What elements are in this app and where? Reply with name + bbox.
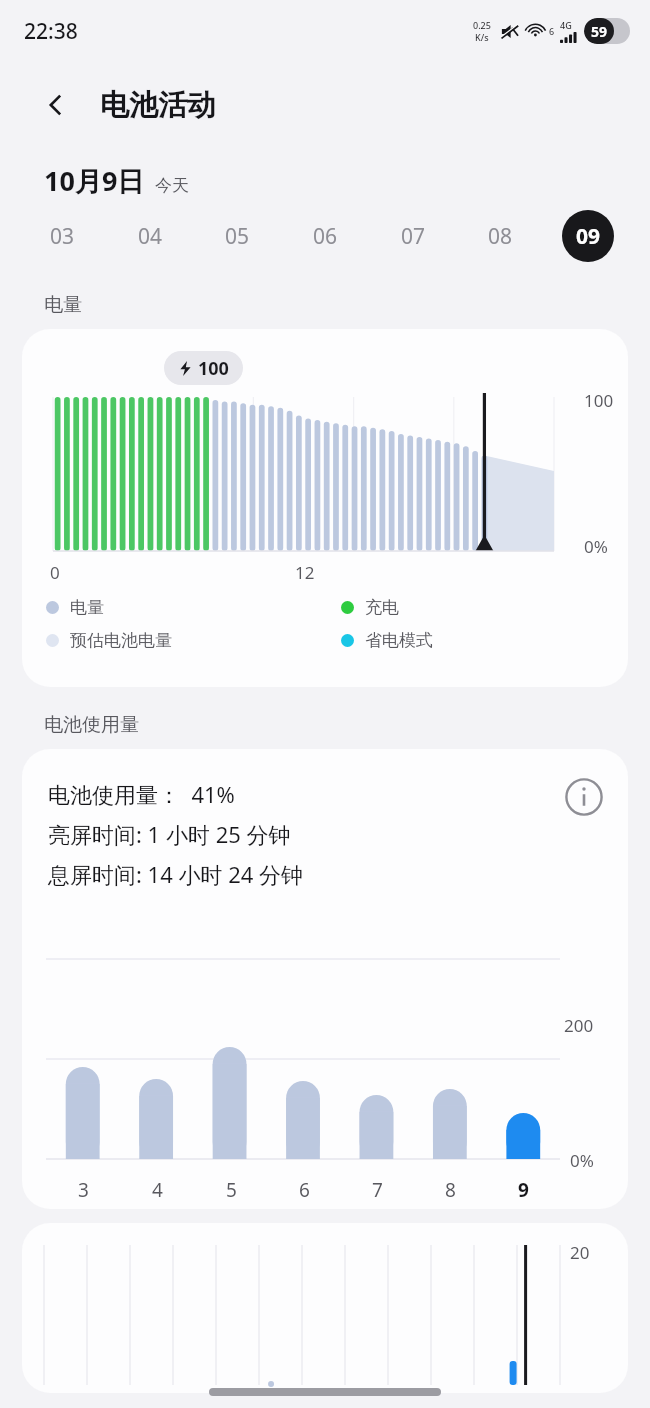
button[interactable]: 20	[22, 1223, 628, 1393]
staticText: 8	[445, 1177, 456, 1203]
staticText: 7	[372, 1177, 383, 1203]
staticText: 3	[78, 1177, 89, 1203]
staticText: 04	[138, 222, 163, 251]
staticText: 电量	[44, 293, 82, 317]
button[interactable]: 电池使用量： 41%	[22, 749, 628, 1209]
staticText: 05	[225, 222, 250, 251]
staticText: 充电	[365, 597, 399, 618]
staticText: 5	[226, 1177, 237, 1203]
staticText: 电池活动	[100, 87, 216, 124]
staticText: 06	[313, 222, 338, 251]
staticText: 电量	[70, 597, 104, 618]
staticText: 0%	[570, 1149, 594, 1172]
button[interactable]: 05	[211, 210, 263, 262]
staticText: 22:38	[24, 17, 78, 46]
staticText: 20	[570, 1241, 590, 1264]
staticText: 100	[584, 389, 614, 412]
staticText: 0.25	[473, 19, 491, 31]
staticText: 省电模式	[365, 630, 433, 651]
staticText: 6	[299, 1177, 310, 1203]
button[interactable]: 09	[562, 210, 614, 262]
staticText: 12	[295, 561, 315, 584]
staticText: 今天	[155, 175, 189, 196]
button[interactable]: 08	[474, 210, 526, 262]
staticText: 09	[576, 222, 601, 251]
staticText: 电池使用量	[44, 713, 139, 737]
staticText: 6	[549, 25, 555, 37]
button[interactable]: 03	[36, 210, 88, 262]
staticText: 亮屏时间: 1 小时 25 分钟	[48, 819, 291, 849]
button[interactable]: 07	[387, 210, 439, 262]
staticText: 0%	[584, 535, 608, 558]
staticText: 08	[488, 222, 513, 251]
staticText: 03	[50, 222, 75, 251]
button[interactable]: 100	[22, 329, 628, 687]
staticText: 预估电池电量	[70, 630, 172, 651]
staticText: 4G	[560, 19, 572, 31]
button[interactable]: 04	[124, 210, 176, 262]
button[interactable]: Info	[562, 775, 606, 819]
staticText: 9	[518, 1177, 529, 1203]
staticText: 59	[591, 22, 608, 41]
staticText: 0	[50, 561, 60, 584]
staticText: 4	[152, 1177, 163, 1203]
staticText: 200	[564, 1014, 594, 1037]
staticText: 息屏时间: 14 小时 24 分钟	[48, 859, 304, 889]
button[interactable]: Back	[34, 83, 78, 127]
staticText: 07	[401, 222, 426, 251]
staticText: K/s	[475, 31, 489, 43]
staticText: 10月9日	[44, 162, 145, 199]
button[interactable]: 06	[299, 210, 351, 262]
staticText: 100	[198, 356, 229, 381]
staticText: 电池使用量： 41%	[48, 779, 235, 809]
